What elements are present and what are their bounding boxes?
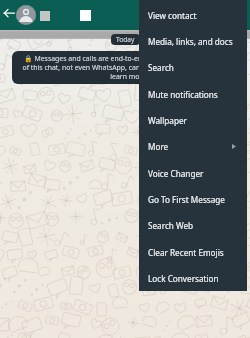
- staticText: Voice Changer: [148, 168, 204, 179]
- staticText: Clear Recent Emojis: [148, 247, 224, 258]
- button[interactable]: Go To First Message: [139, 186, 247, 212]
- staticText: Go To First Message: [148, 194, 225, 205]
- button[interactable]: Mute notifications: [139, 81, 247, 107]
- button[interactable]: Wallpaper: [139, 107, 247, 133]
- staticText: Search: [148, 62, 174, 73]
- button[interactable]: View contact: [139, 2, 247, 28]
- staticText: Mute notifications: [148, 89, 218, 100]
- button[interactable]: Back: [2, 5, 17, 20]
- button[interactable]: Today: [111, 34, 140, 45]
- staticText: Lock Conversation: [148, 273, 219, 284]
- button[interactable]: More: [139, 133, 247, 159]
- staticText: View contact: [148, 10, 197, 21]
- staticText: Wallpaper: [148, 115, 187, 126]
- button[interactable]: 🔒 Messages and calls are end-to-end encr…: [12, 51, 231, 84]
- staticText: Today: [116, 35, 135, 44]
- button[interactable]: Lock Conversation: [139, 265, 247, 291]
- button[interactable]: Clear Recent Emojis: [139, 239, 247, 265]
- button[interactable]: Voice Changer: [139, 160, 247, 186]
- button[interactable]: Search Web: [139, 212, 247, 238]
- staticText: More: [148, 141, 169, 152]
- staticText: Media, links, and docs: [148, 36, 233, 47]
- staticText: Search Web: [148, 220, 194, 231]
- button[interactable]: Contact photo: [16, 5, 36, 25]
- button[interactable]: Search: [139, 54, 247, 80]
- staticText: 🔒 Messages and calls are end-to-end encr…: [22, 54, 221, 81]
- button[interactable]: Media, links, and docs: [139, 28, 247, 54]
